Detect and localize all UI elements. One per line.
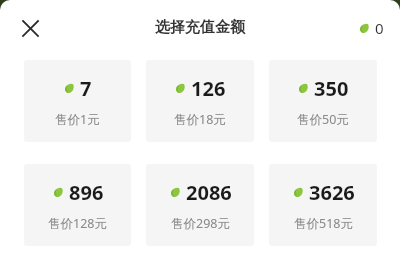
staticText: 售价50元 <box>297 111 349 128</box>
staticText: 350 <box>314 75 349 102</box>
staticText: 售价518元 <box>294 215 353 232</box>
staticText: 3626 <box>309 179 355 206</box>
staticText: 售价128元 <box>48 215 107 232</box>
button[interactable]: 0 <box>358 18 384 38</box>
button[interactable]: 7 <box>24 60 131 142</box>
staticText: 售价298元 <box>171 215 230 232</box>
button[interactable]: 896 <box>24 164 131 246</box>
button[interactable]: 350 <box>269 60 377 142</box>
staticText: 售价18元 <box>174 111 226 128</box>
button[interactable]: 2086 <box>146 164 254 246</box>
staticText: 7 <box>80 75 92 102</box>
staticText: 896 <box>69 179 104 206</box>
button[interactable]: 3626 <box>269 164 377 246</box>
staticText: 126 <box>191 75 226 102</box>
button[interactable]: Close <box>12 10 48 46</box>
button[interactable]: 126 <box>146 60 254 142</box>
staticText: 售价1元 <box>55 111 100 128</box>
staticText: 0 <box>375 18 384 38</box>
staticText: 选择充值金额 <box>155 18 245 37</box>
staticText: 2086 <box>186 179 232 206</box>
